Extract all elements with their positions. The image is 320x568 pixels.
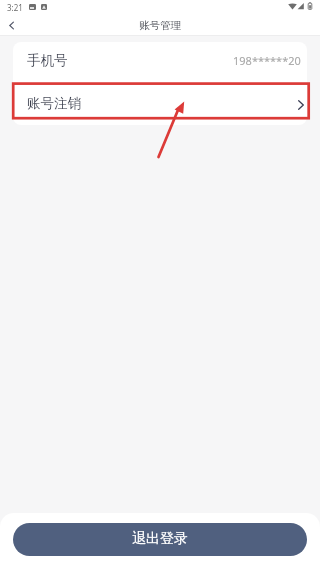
staticText: 3:21 (7, 2, 23, 13)
button[interactable]: 退出登录 (13, 523, 307, 556)
staticText: 账号管理 (139, 19, 181, 32)
staticText: 198******20 (233, 53, 301, 68)
button[interactable]: 手机号 (13, 42, 307, 83)
button[interactable]: 账号注销 (13, 84, 307, 125)
button[interactable]: Back (0, 14, 22, 36)
staticText: 手机号 (27, 52, 68, 69)
staticText: 账号注销 (27, 95, 81, 112)
staticText: 退出登录 (132, 530, 188, 548)
